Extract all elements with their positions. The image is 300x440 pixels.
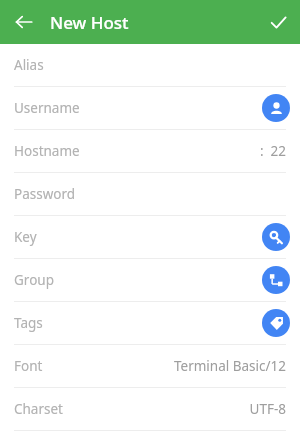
staticText: Hostname: [14, 142, 80, 160]
staticText: Password: [14, 185, 76, 203]
button[interactable]: Choose key: [262, 223, 290, 251]
staticText: Group: [14, 271, 54, 289]
button[interactable]: Alias: [0, 44, 300, 86]
staticText: Font: [14, 357, 43, 375]
staticText: Alias: [14, 56, 44, 74]
staticText: Key: [14, 228, 37, 246]
staticText: Tags: [14, 314, 43, 332]
button[interactable]: Group: [0, 259, 300, 301]
button[interactable]: Username: [0, 87, 300, 129]
button[interactable]: Choose user: [262, 94, 290, 122]
staticText: Username: [14, 99, 80, 117]
button[interactable]: Key: [0, 216, 300, 258]
button[interactable]: Password: [0, 173, 300, 215]
button[interactable]: Save: [262, 6, 294, 38]
button[interactable]: Back: [8, 6, 40, 38]
button[interactable]: Hostname: [0, 130, 300, 172]
staticText: Charset: [14, 400, 63, 418]
button[interactable]: Charset: [0, 388, 300, 430]
staticText: UTF-8: [249, 400, 286, 418]
button[interactable]: Font: [0, 345, 300, 387]
button[interactable]: Tags: [0, 302, 300, 344]
staticText: New Host: [50, 11, 129, 34]
button[interactable]: Choose tags: [262, 309, 290, 337]
staticText: : 22: [259, 142, 286, 160]
staticText: Terminal Basic/12: [173, 357, 286, 375]
button[interactable]: Choose group: [262, 266, 290, 294]
